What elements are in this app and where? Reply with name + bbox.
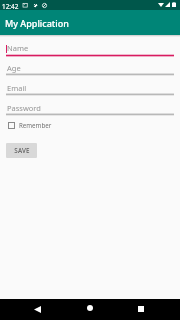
button[interactable]: Recent apps — [133, 301, 149, 317]
button[interactable]: Email — [0, 80, 180, 96]
staticText: SAVE — [14, 146, 30, 155]
button[interactable]: Home — [82, 301, 98, 317]
button[interactable]: Age — [0, 60, 180, 76]
button[interactable]: Password — [0, 100, 180, 116]
staticText: Email — [7, 83, 27, 93]
button[interactable]: Back — [26, 301, 42, 317]
staticText: Age — [7, 63, 21, 73]
staticText: Remember — [19, 121, 52, 129]
button[interactable]: Name — [0, 40, 180, 56]
staticText: My Application — [5, 17, 69, 29]
button[interactable]: Remember — [6, 119, 52, 131]
staticText: Name — [7, 43, 29, 53]
button[interactable]: My Application — [0, 10, 180, 35]
staticText: 12:42 — [2, 2, 19, 11]
button[interactable]: SAVE — [6, 143, 37, 158]
staticText: Password — [7, 103, 41, 113]
